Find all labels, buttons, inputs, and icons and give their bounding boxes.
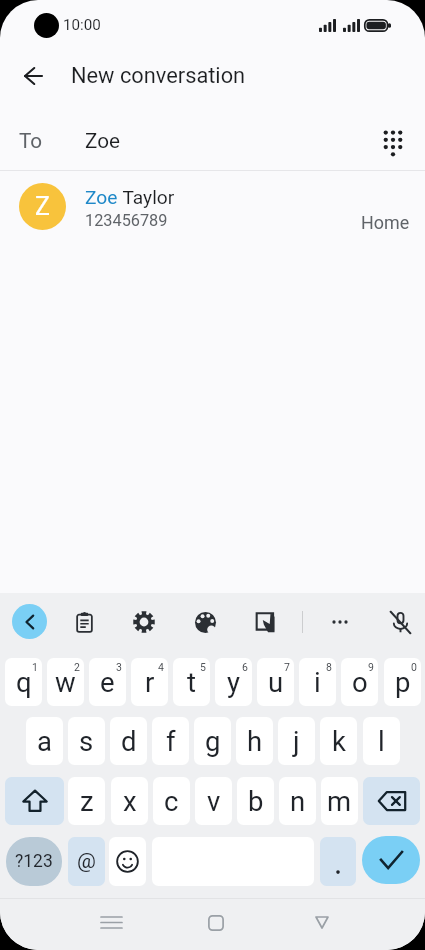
button[interactable]: z xyxy=(68,777,105,825)
staticText: i xyxy=(314,666,321,698)
button[interactable]: e xyxy=(89,658,126,706)
button[interactable]: w xyxy=(47,658,84,706)
button[interactable] xyxy=(320,837,356,886)
staticText: t xyxy=(187,666,196,698)
staticText: w xyxy=(55,666,76,698)
staticText: k xyxy=(332,725,346,757)
staticText: m xyxy=(327,785,352,817)
staticText: 7 xyxy=(284,661,290,673)
button[interactable]: Backspace xyxy=(363,777,420,825)
button[interactable]: t xyxy=(173,658,210,706)
button[interactable]: Voice input off xyxy=(380,602,420,642)
staticText: d xyxy=(121,725,137,757)
staticText: g xyxy=(205,725,221,757)
button[interactable]: Themes xyxy=(185,602,225,642)
staticText: h xyxy=(247,725,263,757)
staticText: b xyxy=(248,785,264,817)
staticText: To xyxy=(19,129,43,153)
button[interactable]: k xyxy=(320,717,357,765)
staticText: 3 xyxy=(116,661,122,673)
button[interactable]: Back xyxy=(11,53,56,98)
staticText: 8 xyxy=(326,661,332,673)
staticText: 0 xyxy=(411,661,417,673)
button[interactable]: p xyxy=(384,658,421,706)
staticText: 123456789 xyxy=(85,211,168,230)
button[interactable]: r xyxy=(131,658,168,706)
staticText: 6 xyxy=(242,661,248,673)
button[interactable]: x xyxy=(111,777,148,825)
button[interactable]: More options xyxy=(320,602,360,642)
button[interactable]: m xyxy=(321,777,358,825)
staticText: New conversation xyxy=(71,63,246,89)
staticText: q xyxy=(16,666,32,698)
staticText: Taylor xyxy=(118,186,175,209)
button[interactable]: b xyxy=(237,777,274,825)
staticText: Home xyxy=(361,212,410,233)
staticText: ?123 xyxy=(15,851,53,872)
staticText: 1 xyxy=(32,661,38,673)
staticText: z xyxy=(80,785,94,817)
button[interactable]: u xyxy=(257,658,294,706)
button[interactable]: a xyxy=(26,717,63,765)
staticText: Z xyxy=(35,192,50,221)
button[interactable]: f xyxy=(152,717,189,765)
button[interactable]: Shift xyxy=(5,777,64,825)
staticText: e xyxy=(100,666,115,698)
staticText: f xyxy=(166,725,176,757)
staticText: o xyxy=(352,666,368,698)
button[interactable]: Stickers xyxy=(245,602,285,642)
staticText: s xyxy=(79,725,94,757)
button[interactable]: Back xyxy=(300,897,344,948)
staticText: v xyxy=(207,785,221,817)
button[interactable]: Home xyxy=(194,897,238,948)
button[interactable]: i xyxy=(299,658,336,706)
staticText: Zoe xyxy=(85,129,120,153)
button[interactable]: Z xyxy=(0,171,425,241)
staticText: y xyxy=(227,666,241,698)
staticText: 2 xyxy=(74,661,80,673)
staticText: c xyxy=(164,785,179,817)
button[interactable]: y xyxy=(215,658,252,706)
staticText: n xyxy=(290,785,306,817)
button[interactable]: o xyxy=(341,658,378,706)
button[interactable]: d xyxy=(110,717,147,765)
button[interactable]: c xyxy=(153,777,190,825)
button[interactable]: h xyxy=(236,717,273,765)
button[interactable]: l xyxy=(363,717,400,765)
button[interactable]: v xyxy=(195,777,232,825)
staticText: 9 xyxy=(368,661,374,673)
staticText: a xyxy=(37,725,52,757)
button[interactable]: Recent apps xyxy=(89,897,133,948)
button[interactable]: Send xyxy=(362,836,420,884)
button[interactable]: Clipboard xyxy=(64,602,104,642)
button[interactable]: n xyxy=(279,777,316,825)
staticText: 10:00 xyxy=(63,16,101,34)
staticText: r xyxy=(145,666,155,698)
staticText: p xyxy=(395,666,411,698)
staticText: u xyxy=(268,666,284,698)
button[interactable]: g xyxy=(194,717,231,765)
button[interactable]: q xyxy=(5,658,42,706)
staticText: l xyxy=(378,725,385,757)
staticText: 4 xyxy=(158,661,164,673)
staticText: j xyxy=(293,725,300,757)
button[interactable]: Settings xyxy=(124,602,164,642)
staticText: 5 xyxy=(200,661,206,673)
staticText: x xyxy=(123,785,137,817)
staticText: @ xyxy=(77,849,96,874)
button[interactable]: @ xyxy=(68,837,105,886)
button[interactable]: Previous xyxy=(12,604,47,639)
button[interactable]: s xyxy=(68,717,105,765)
button[interactable]: Emoji xyxy=(109,837,146,886)
button[interactable]: j xyxy=(278,717,315,765)
staticText: Zoe xyxy=(85,186,118,209)
button[interactable]: ?123 xyxy=(6,837,62,886)
button[interactable]: Dialpad xyxy=(369,119,416,166)
